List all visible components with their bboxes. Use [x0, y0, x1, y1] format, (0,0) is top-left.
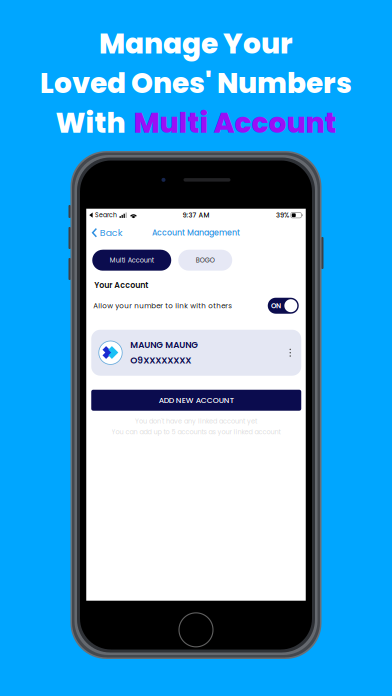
button[interactable]: Back [86, 223, 128, 243]
staticText: ON [271, 301, 281, 311]
staticText: ADD NEW ACCOUNT [159, 395, 234, 406]
staticText: Search [95, 211, 117, 219]
staticText: BOGO [196, 256, 215, 265]
staticText: Manage Your [99, 24, 293, 63]
staticText: 39% [276, 210, 289, 220]
staticText: O9XXXXXXXX [130, 354, 191, 367]
staticText: You don't have any linked account yet [135, 417, 257, 426]
button[interactable]: MAUNG MAUNG [91, 330, 301, 376]
staticText: 9:37 AM [182, 210, 209, 220]
staticText: Your Account [94, 280, 148, 291]
staticText: Loved Ones' Numbers [40, 64, 352, 103]
button[interactable]: Multi Account [92, 250, 171, 271]
staticText: Back [100, 226, 123, 239]
staticText: Multi Account [133, 103, 336, 143]
staticText: You can add up to 5 accounts as your lin… [111, 427, 280, 436]
staticText: With [55, 103, 125, 143]
staticText: Multi Account [110, 256, 154, 265]
staticText: Account Management [152, 227, 240, 238]
button[interactable]: ON [268, 298, 299, 314]
staticText: MAUNG MAUNG [130, 339, 198, 351]
staticText: Allow your number to link with others [93, 301, 232, 311]
button[interactable]: BOGO [178, 250, 232, 271]
button[interactable]: ADD NEW ACCOUNT [91, 390, 301, 411]
